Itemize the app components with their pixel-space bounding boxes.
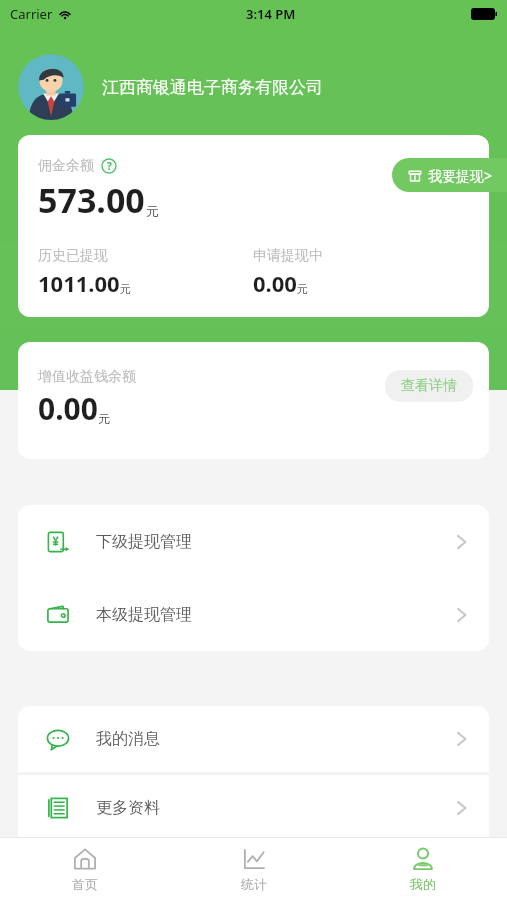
- staticText: 本级提现管理: [96, 605, 192, 625]
- staticText: 1011.00: [38, 268, 120, 298]
- staticText: 我要提现>: [428, 166, 493, 185]
- button[interactable]: 首页: [0, 838, 169, 900]
- staticText: 我的消息: [96, 729, 160, 749]
- staticText: Carrier: [10, 5, 53, 23]
- staticText: 首页: [72, 876, 98, 892]
- staticText: 江西商银通电子商务有限公司: [102, 77, 323, 98]
- staticText: 更多资料: [96, 798, 160, 818]
- staticText: 0.00: [38, 388, 98, 429]
- staticText: 0.00: [253, 268, 297, 298]
- staticText: 增值收益钱余额: [38, 368, 136, 386]
- staticText: 元: [297, 282, 308, 296]
- staticText: 查看详情: [401, 377, 457, 395]
- button[interactable]: 江西商银通电子商务有限公司: [18, 54, 507, 120]
- staticText: 元: [120, 282, 131, 296]
- button[interactable]: 统计: [169, 838, 338, 900]
- button[interactable]: 我的: [338, 838, 507, 900]
- staticText: 573.00: [38, 177, 145, 223]
- staticText: 申请提现中: [253, 247, 323, 265]
- staticText: 元: [146, 203, 159, 219]
- button[interactable]: 我的消息: [18, 706, 489, 772]
- staticText: 元: [98, 411, 110, 426]
- button[interactable]: 我要提现>: [392, 158, 507, 192]
- button[interactable]: 本级提现管理: [18, 578, 489, 651]
- button[interactable]: 查看详情: [385, 370, 473, 402]
- staticText: 历史已提现: [38, 247, 108, 265]
- button[interactable]: 更多资料: [18, 775, 489, 841]
- staticText: 我的: [410, 876, 436, 892]
- staticText: 下级提现管理: [96, 532, 192, 552]
- button[interactable]: 帮助: [101, 158, 117, 174]
- button[interactable]: 下级提现管理: [18, 505, 489, 578]
- staticText: 3:14 PM: [246, 5, 296, 23]
- staticText: 统计: [241, 876, 267, 892]
- staticText: 佣金余额: [38, 157, 94, 175]
- staticText: ?: [107, 159, 112, 173]
